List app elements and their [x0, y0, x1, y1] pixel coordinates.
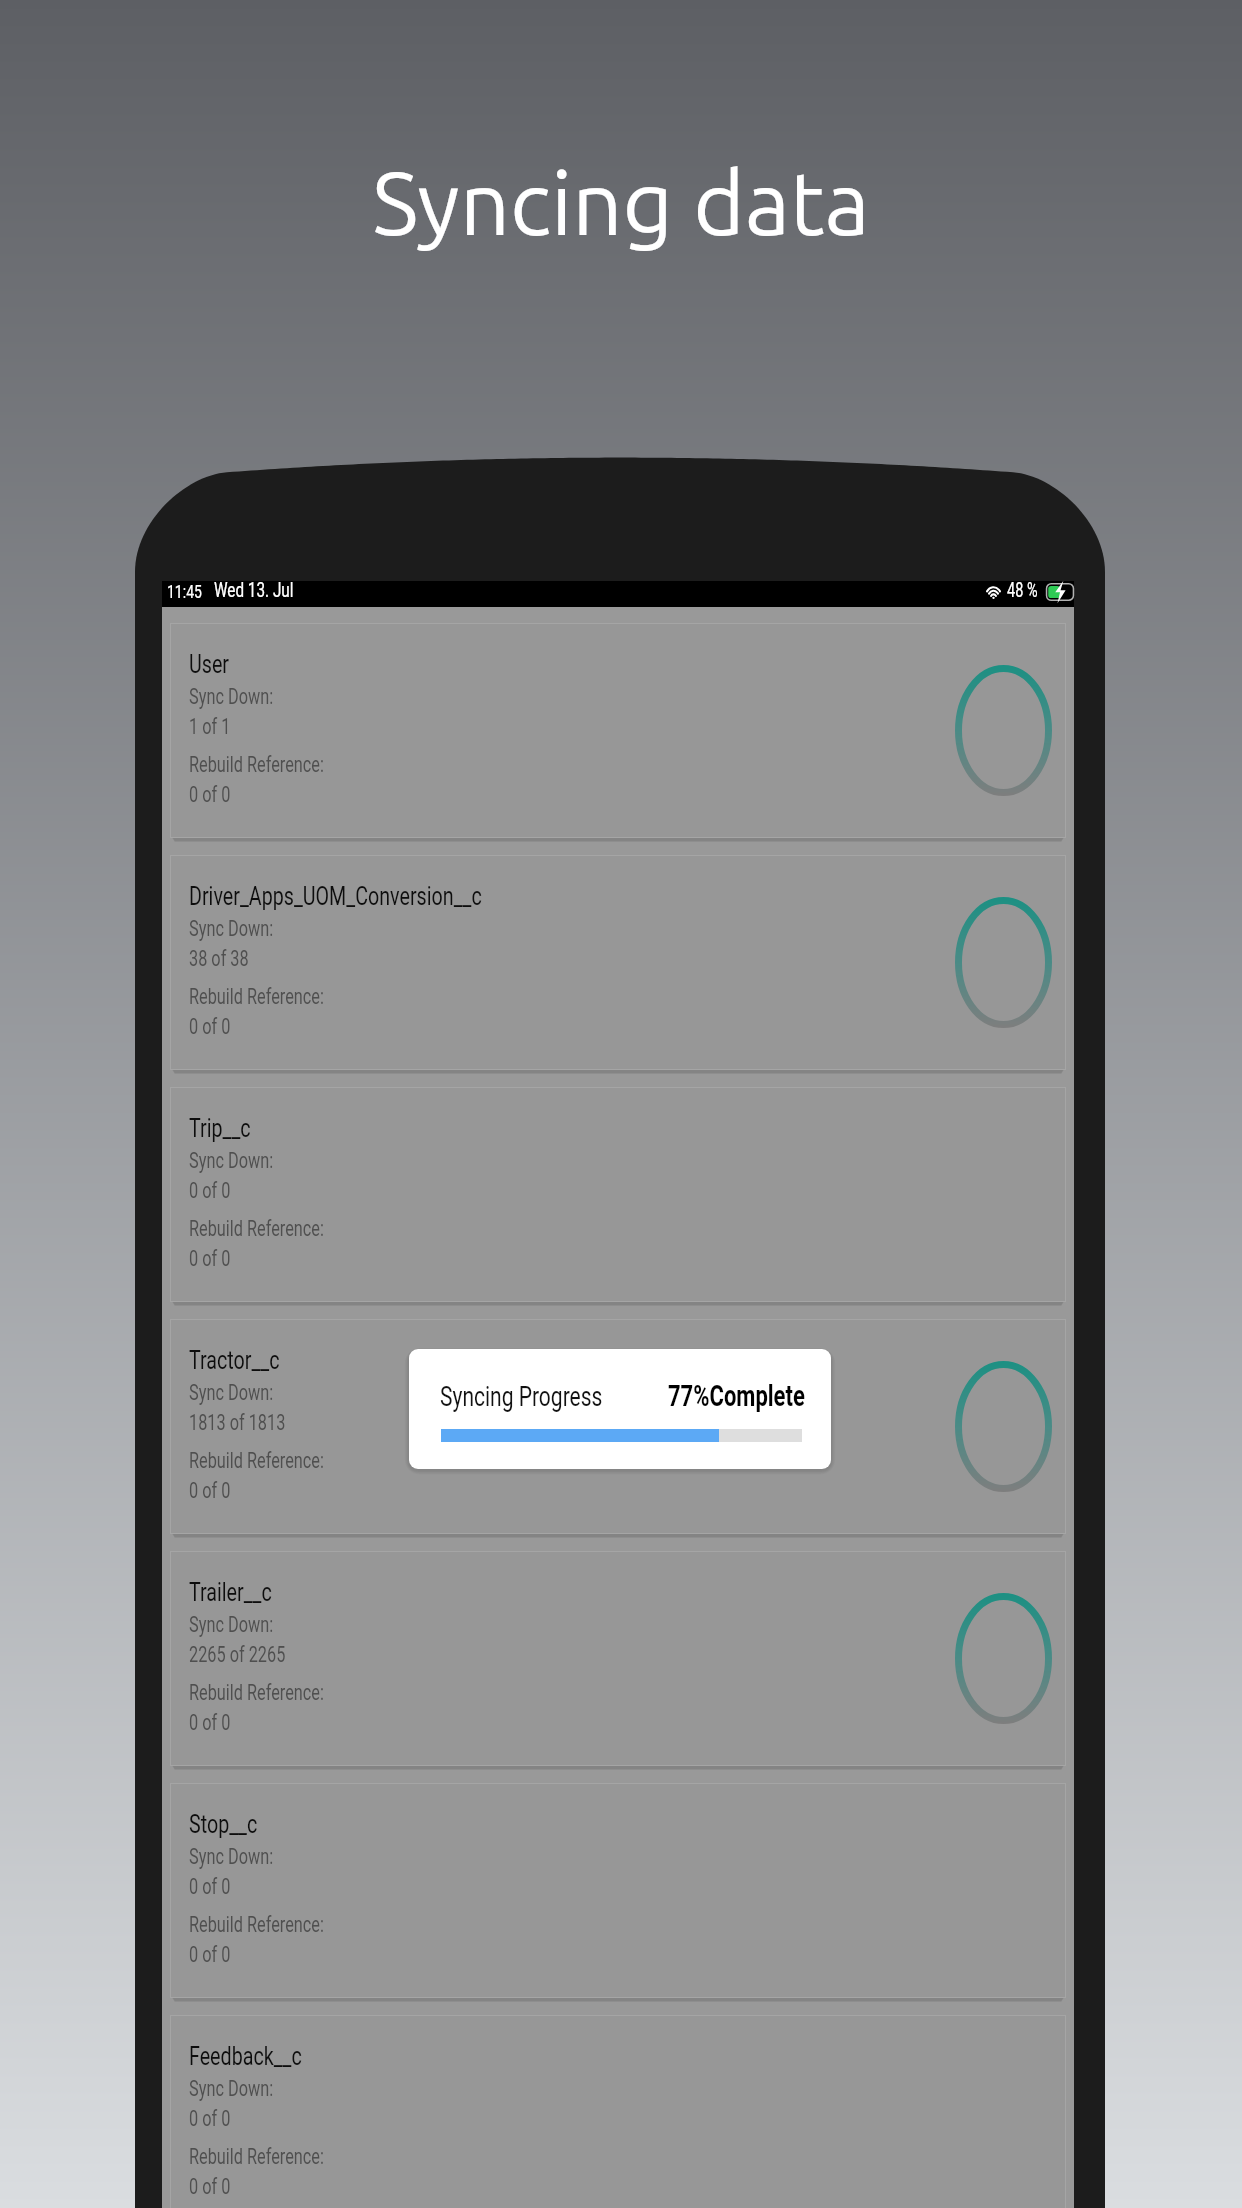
staticText: Trip__c: [189, 1113, 251, 1144]
staticText: 38 of 38: [189, 946, 249, 972]
other: Wi-Fi signal: [985, 584, 1002, 600]
staticText: Sync Down:: [189, 1380, 274, 1406]
staticText: Sync Down:: [189, 916, 274, 942]
staticText: Rebuild Reference:: [189, 1912, 324, 1938]
button[interactable]: Tractor__c: [170, 1319, 1066, 1537]
button[interactable]: Driver_Apps_UOM_Conversion__c: [170, 855, 1066, 1073]
staticText: Tractor__c: [189, 1345, 280, 1376]
button[interactable]: Feedback__c: [170, 2015, 1066, 2208]
staticText: 2265 of 2265: [189, 1642, 286, 1668]
staticText: 48 %: [1007, 579, 1038, 602]
staticText: Stop__c: [189, 1809, 258, 1840]
staticText: Driver_Apps_UOM_Conversion__c: [189, 881, 482, 912]
staticText: 77%Complete: [668, 1379, 805, 1414]
staticText: 0 of 0: [189, 1014, 231, 1040]
staticText: Rebuild Reference:: [189, 984, 324, 1010]
staticText: Rebuild Reference:: [189, 2144, 324, 2170]
other: Battery charging 48 percent: [1046, 583, 1074, 601]
staticText: 0 of 0: [189, 1942, 231, 1968]
staticText: 0 of 0: [189, 1874, 231, 1900]
staticText: Rebuild Reference:: [189, 1216, 324, 1242]
staticText: 0 of 0: [189, 1478, 231, 1504]
staticText: 11:45: [167, 580, 202, 602]
button[interactable]: Trailer__c: [170, 1551, 1066, 1769]
staticText: 0 of 0: [189, 2106, 231, 2132]
staticText: Trailer__c: [189, 1577, 272, 1608]
staticText: 0 of 0: [189, 1246, 231, 1272]
staticText: 0 of 0: [189, 2174, 231, 2200]
staticText: Rebuild Reference:: [189, 1448, 324, 1474]
staticText: 0 of 0: [189, 1178, 231, 1204]
staticText: Rebuild Reference:: [189, 1680, 324, 1706]
staticText: 1813 of 1813: [189, 1410, 286, 1436]
staticText: 1 of 1: [189, 714, 231, 740]
staticText: Syncing Progress: [440, 1380, 603, 1414]
staticText: Sync Down:: [189, 2076, 274, 2102]
staticText: Sync Down:: [189, 1612, 274, 1638]
staticText: Sync Down:: [189, 1148, 274, 1174]
staticText: User: [189, 649, 230, 680]
staticText: Feedback__c: [189, 2041, 302, 2072]
staticText: Wed 13. Jul: [214, 578, 294, 602]
staticText: 0 of 0: [189, 782, 231, 808]
button[interactable]: Stop__c: [170, 1783, 1066, 2001]
button[interactable]: User: [170, 623, 1066, 841]
staticText: Sync Down:: [189, 1844, 274, 1870]
staticText: Syncing data: [0, 153, 1242, 252]
staticText: Sync Down:: [189, 684, 274, 710]
button[interactable]: Trip__c: [170, 1087, 1066, 1305]
staticText: Rebuild Reference:: [189, 752, 324, 778]
staticText: 0 of 0: [189, 1710, 231, 1736]
